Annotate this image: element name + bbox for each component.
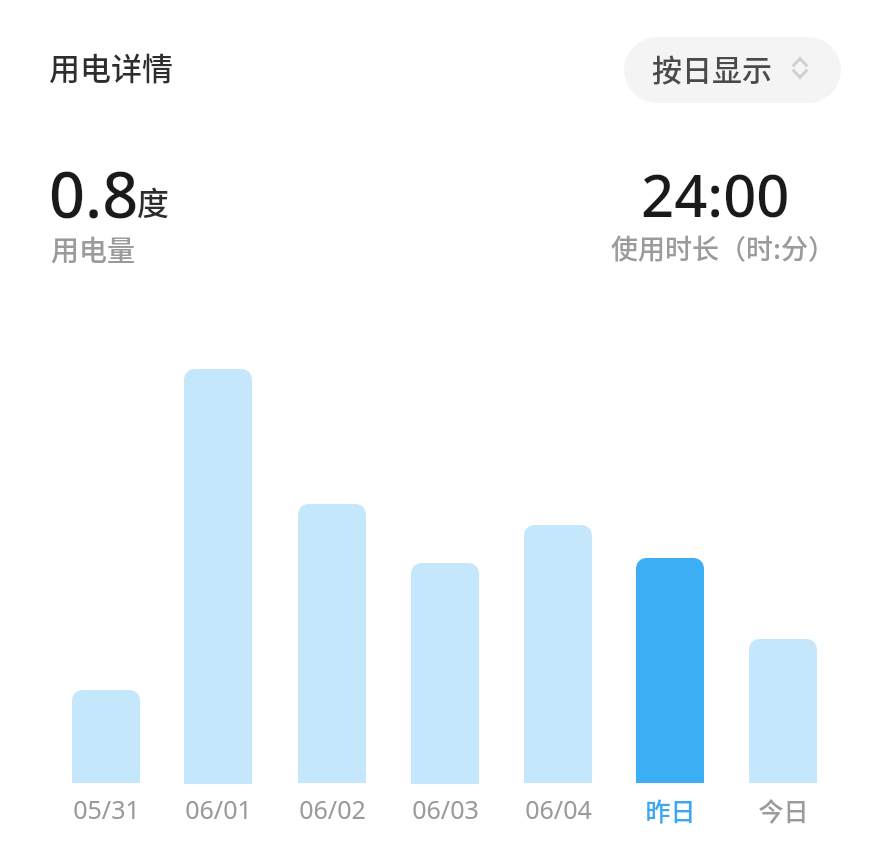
button[interactable]: 按日显示: [624, 37, 841, 103]
staticText: 05/31: [73, 792, 140, 826]
staticText: 使用时长（时:分）: [611, 228, 836, 267]
staticText: 06/02: [299, 792, 366, 826]
button[interactable]: [411, 563, 479, 784]
staticText: 昨日: [645, 792, 696, 828]
staticText: 用电详情: [49, 44, 173, 89]
button[interactable]: [72, 690, 140, 783]
staticText: 06/01: [185, 792, 252, 826]
staticText: 按日显示: [652, 46, 772, 89]
staticText: 06/04: [525, 792, 592, 826]
button[interactable]: [636, 558, 704, 783]
button[interactable]: [749, 639, 817, 783]
staticText: 24:00: [641, 155, 790, 234]
staticText: 06/03: [412, 792, 479, 826]
staticText: 0.8: [49, 151, 139, 237]
staticText: 今日: [758, 792, 809, 828]
staticText: 度: [137, 178, 170, 224]
staticText: 用电量: [51, 229, 136, 270]
